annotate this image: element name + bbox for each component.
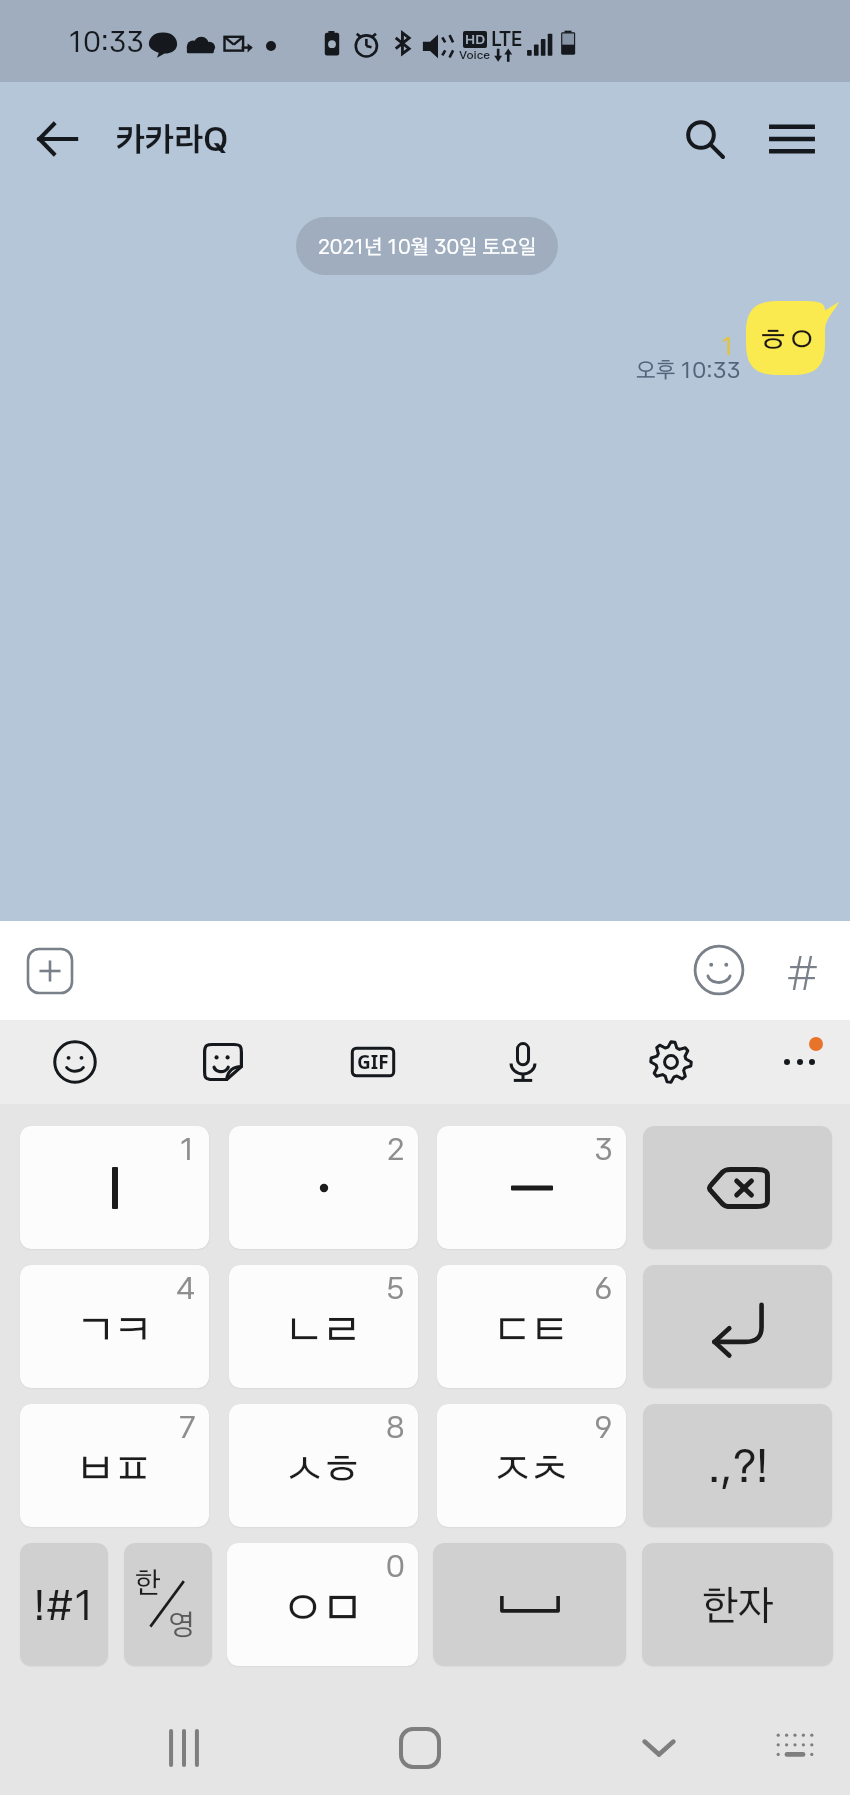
button[interactable]: More options <box>758 1020 842 1104</box>
button[interactable]: 4 <box>20 1265 209 1388</box>
staticText: 한 <box>135 1564 161 1600</box>
staticText: 1 <box>180 1130 196 1167</box>
button[interactable]: 5 <box>229 1265 418 1388</box>
button[interactable]: Recents <box>139 1703 229 1793</box>
staticText: 2 <box>387 1130 405 1167</box>
button[interactable]: !#1 <box>20 1543 108 1666</box>
button[interactable]: Backspace <box>643 1126 832 1249</box>
button[interactable]: Home <box>375 1703 465 1793</box>
staticText: ㄱㅋ <box>77 1301 152 1352</box>
staticText: # <box>787 939 819 1001</box>
staticText: LTE <box>491 27 523 51</box>
button[interactable]: Menu <box>753 100 831 178</box>
button[interactable]: Add attachment <box>20 941 80 1001</box>
staticText: ㅈㅊ <box>494 1440 569 1491</box>
staticText: 9 <box>594 1408 613 1445</box>
staticText: 1 <box>722 332 734 361</box>
button[interactable]: Voice input <box>481 1020 565 1104</box>
button[interactable]: Back <box>18 100 96 178</box>
staticText: !#1 <box>34 1580 95 1630</box>
button[interactable]: 8 <box>229 1404 418 1527</box>
button[interactable]: Korean English toggle <box>124 1543 212 1666</box>
staticText: ㅅㅎ <box>286 1440 361 1491</box>
staticText: ㅂㅍ <box>77 1440 152 1491</box>
button[interactable]: 2021년 10월 30일 토요일 <box>296 217 558 275</box>
button[interactable]: 0 <box>227 1543 418 1666</box>
staticText: 5 <box>386 1269 405 1306</box>
button[interactable]: 7 <box>20 1404 209 1527</box>
button[interactable]: 한자 <box>642 1543 833 1666</box>
button[interactable]: ㅣ <box>20 1126 209 1249</box>
staticText: 오후 10:33 <box>636 356 741 383</box>
button[interactable]: Emoji <box>33 1020 117 1104</box>
staticText: 3 <box>594 1130 613 1167</box>
button[interactable]: .,?! <box>643 1404 832 1527</box>
staticText: 2021년 10월 30일 토요일 <box>318 234 537 259</box>
staticText: GIF <box>357 1049 389 1075</box>
button[interactable]: Emoticon <box>688 939 750 1001</box>
button[interactable]: 9 <box>437 1404 626 1527</box>
staticText: 6 <box>594 1269 613 1306</box>
staticText: 8 <box>386 1408 405 1445</box>
staticText: 카카라Q <box>116 119 229 160</box>
button[interactable]: Sticker <box>181 1020 265 1104</box>
staticText: Voice <box>459 48 490 62</box>
button[interactable]: Space <box>433 1543 626 1666</box>
button[interactable]: Enter <box>643 1265 832 1388</box>
staticText: ㅇㅁ <box>283 1577 363 1632</box>
button[interactable]: Hide keyboard <box>614 1703 704 1793</box>
button[interactable]: 6 <box>437 1265 626 1388</box>
staticText: 영 <box>169 1606 195 1642</box>
staticText: 한자 <box>702 1580 774 1630</box>
button[interactable]: Keyboard <box>750 1703 840 1793</box>
staticText: 10:33 <box>69 24 144 59</box>
button[interactable]: ㅡ <box>437 1126 626 1249</box>
staticText: ㄴㄹ <box>286 1301 361 1352</box>
staticText: 4 <box>176 1269 196 1306</box>
staticText: ㄷㅌ <box>494 1301 569 1352</box>
button[interactable]: · <box>229 1126 418 1249</box>
staticText: .,?! <box>708 1438 768 1493</box>
staticText: ㅎㅇ <box>759 318 817 357</box>
staticText: 0 <box>386 1547 405 1584</box>
staticText: HD <box>465 31 485 48</box>
staticText: 7 <box>179 1408 196 1445</box>
button[interactable]: Settings <box>629 1020 713 1104</box>
button[interactable]: Search <box>666 100 744 178</box>
button[interactable]: GIF <box>331 1020 415 1104</box>
button[interactable]: Hashtag <box>772 939 834 1001</box>
